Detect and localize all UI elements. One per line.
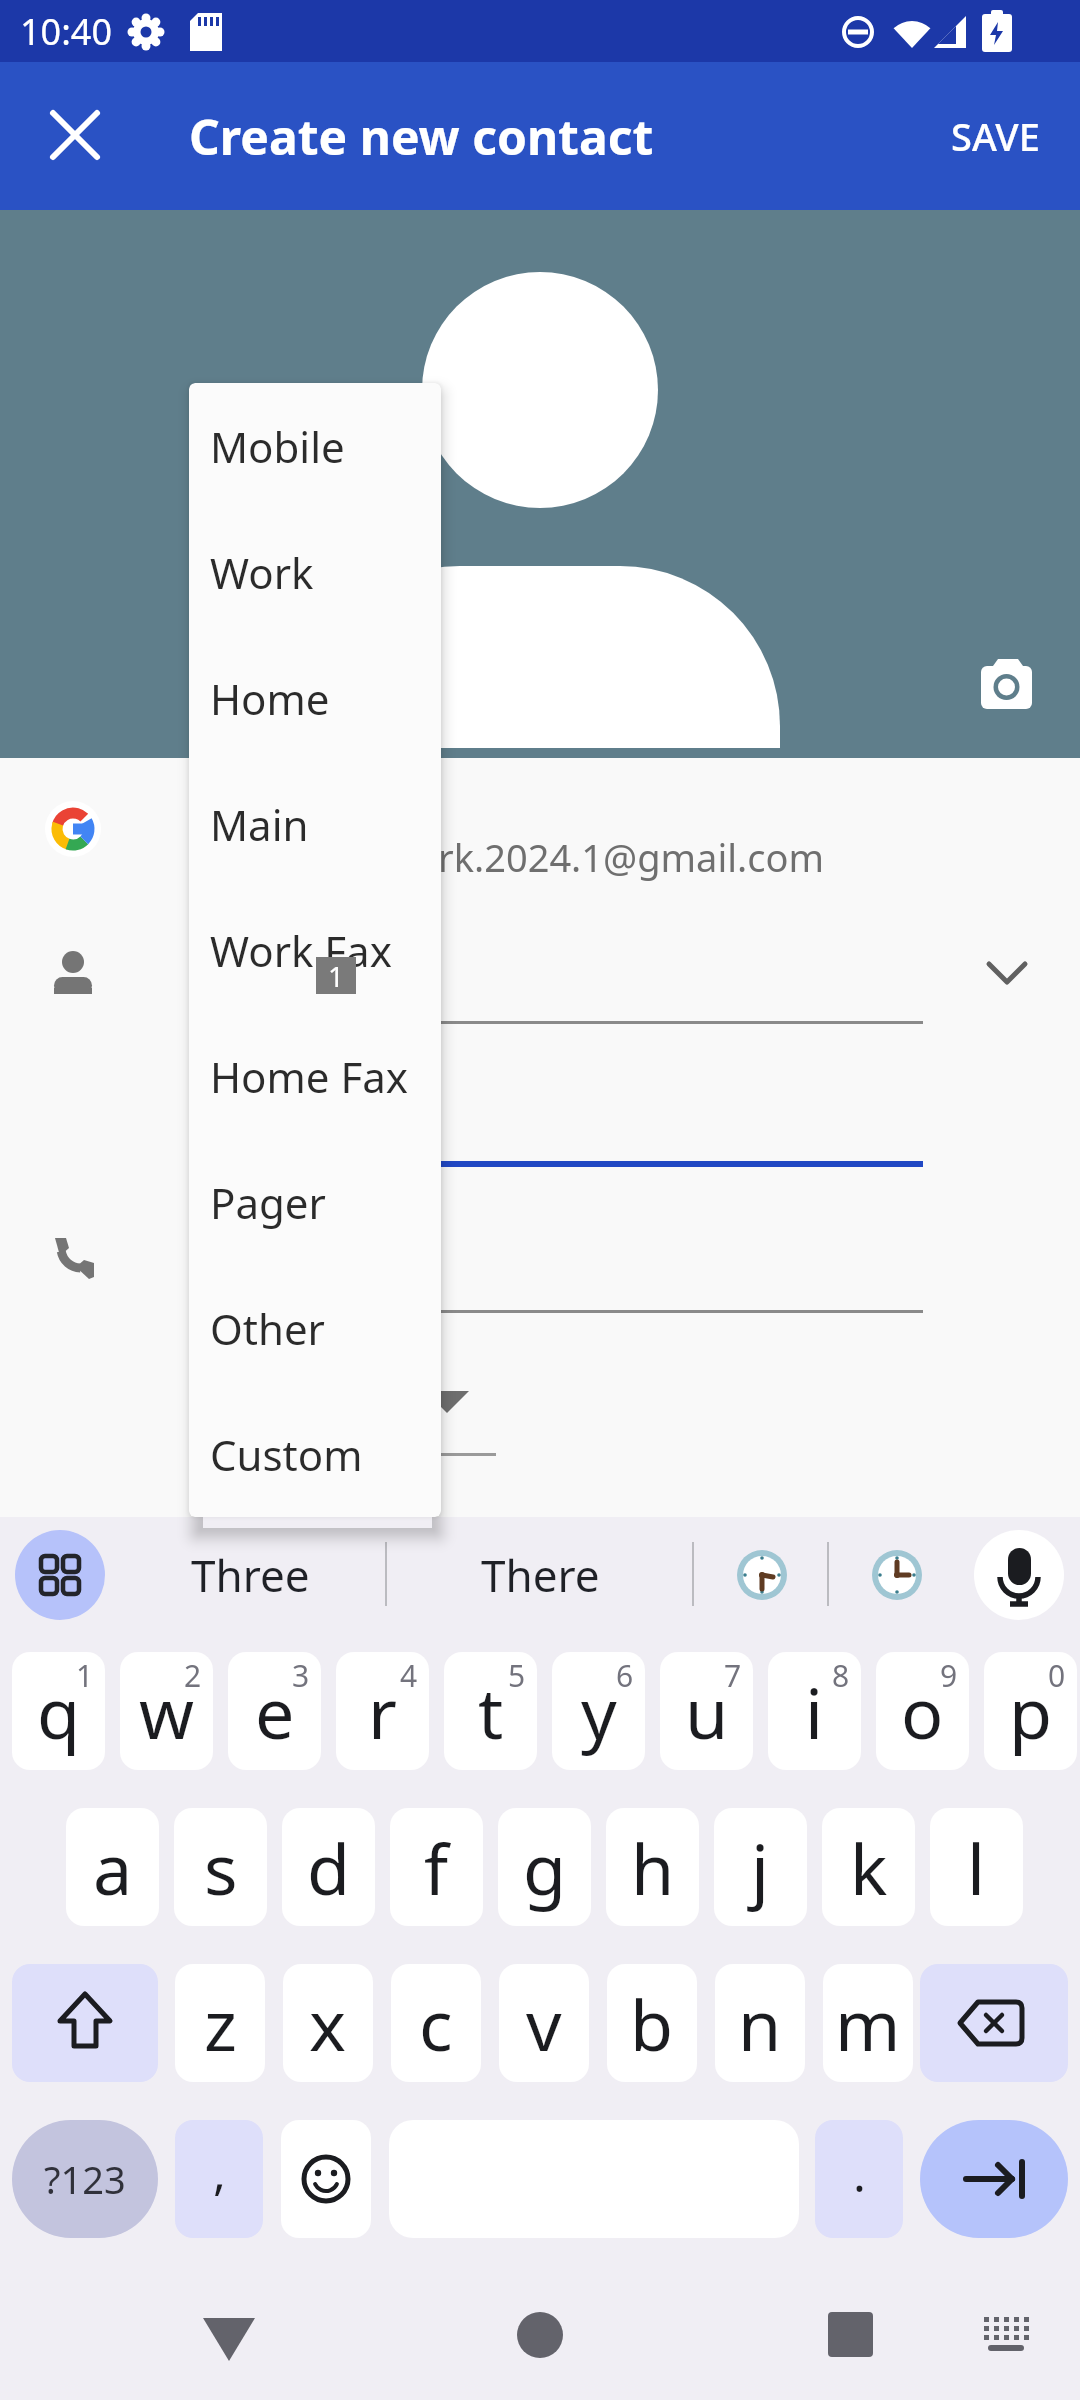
staticText: d	[307, 1820, 351, 1915]
button[interactable]: s	[174, 1808, 267, 1926]
staticText: 10:40	[20, 7, 113, 56]
staticText: 1	[76, 1655, 94, 1696]
button[interactable]: d	[282, 1808, 375, 1926]
staticText: Work	[210, 544, 314, 601]
button[interactable]	[500, 2295, 580, 2375]
button[interactable]: Mobile	[189, 383, 441, 509]
staticText: x	[309, 1976, 347, 2071]
button[interactable]: l	[930, 1808, 1023, 1926]
staticText: .	[853, 2141, 866, 2206]
button[interactable]: Custom	[189, 1391, 441, 1517]
staticText: ?123	[44, 2153, 126, 2205]
button[interactable]: v	[499, 1964, 589, 2082]
button[interactable]: o	[876, 1652, 969, 1770]
staticText: r	[368, 1664, 397, 1759]
staticText: Pager	[210, 1174, 326, 1231]
button[interactable]: ?123	[12, 2120, 158, 2238]
staticText: Custom	[210, 1426, 363, 1483]
staticText: k	[850, 1820, 888, 1915]
button[interactable]	[40, 100, 110, 170]
button[interactable]	[281, 2120, 371, 2238]
button[interactable]: q	[12, 1652, 105, 1770]
staticText: n	[738, 1976, 782, 2071]
button[interactable]: Home Fax	[189, 1013, 441, 1139]
staticText: 4	[400, 1655, 418, 1696]
button[interactable]: m	[823, 1964, 913, 2082]
staticText: Create new contact	[189, 104, 654, 169]
staticText: g	[523, 1820, 567, 1915]
staticText: ,	[213, 2139, 226, 2204]
button[interactable]: There	[410, 1530, 670, 1620]
button[interactable]: Work	[189, 509, 441, 635]
staticText: 5	[508, 1655, 526, 1696]
staticText: h	[631, 1820, 675, 1915]
staticText: w	[139, 1664, 195, 1759]
button[interactable]	[920, 1964, 1068, 2082]
staticText: s	[204, 1820, 238, 1915]
staticText: 6	[616, 1655, 634, 1696]
button[interactable]: Work Fax	[189, 887, 441, 1013]
button[interactable]	[810, 2295, 890, 2375]
staticText: Three	[191, 1545, 310, 1605]
button[interactable]: p	[984, 1652, 1077, 1770]
staticText: z	[204, 1976, 237, 2071]
staticText: j	[751, 1820, 770, 1915]
button[interactable]: y	[552, 1652, 645, 1770]
button[interactable]: u	[660, 1652, 753, 1770]
staticText: v	[526, 1976, 562, 2071]
button[interactable]: j	[714, 1808, 807, 1926]
staticText: Home Fax	[210, 1048, 408, 1105]
staticText: 1	[328, 957, 345, 994]
button[interactable]: .	[815, 2120, 903, 2238]
staticText: 7	[724, 1655, 742, 1696]
staticText: t	[478, 1664, 504, 1759]
button[interactable]: SAVE	[930, 62, 1060, 210]
button[interactable]: x	[283, 1964, 373, 2082]
staticText: 0	[1048, 1655, 1066, 1696]
button[interactable]: c	[391, 1964, 481, 2082]
staticText: 8	[832, 1655, 850, 1696]
button[interactable]: a	[66, 1808, 159, 1926]
staticText: rk.2024.1@gmail.com	[438, 831, 824, 883]
staticText: o	[901, 1664, 944, 1759]
staticText: Main	[210, 796, 309, 853]
button[interactable]: Home	[189, 635, 441, 761]
button[interactable]: h	[606, 1808, 699, 1926]
staticText: p	[1009, 1664, 1053, 1759]
button[interactable]	[12, 1964, 158, 2082]
button[interactable]	[190, 2295, 270, 2375]
button[interactable]: k	[822, 1808, 915, 1926]
staticText: c	[419, 1976, 453, 2071]
staticText: l	[967, 1820, 986, 1915]
staticText: y	[581, 1664, 617, 1759]
button[interactable]	[15, 1530, 105, 1620]
staticText: Other	[210, 1300, 325, 1357]
button[interactable]: Other	[189, 1265, 441, 1391]
staticText: Work Fax	[210, 922, 392, 979]
staticText: b	[630, 1976, 674, 2071]
button[interactable]: r	[336, 1652, 429, 1770]
button[interactable]	[974, 1530, 1064, 1620]
button[interactable]	[0, 210, 1080, 758]
button[interactable]: z	[175, 1964, 265, 2082]
button[interactable]: n	[715, 1964, 805, 2082]
button[interactable]: Main	[189, 761, 441, 887]
staticText: f	[424, 1820, 449, 1915]
button[interactable]	[920, 2120, 1068, 2238]
button[interactable]: Three	[120, 1530, 380, 1620]
button[interactable]: b	[607, 1964, 697, 2082]
staticText: SAVE	[951, 110, 1040, 162]
button[interactable]: g	[498, 1808, 591, 1926]
staticText: q	[37, 1664, 81, 1759]
button[interactable]: t	[444, 1652, 537, 1770]
staticText: Home	[210, 670, 330, 727]
button[interactable]	[975, 2300, 1045, 2370]
button[interactable]: f	[390, 1808, 483, 1926]
button[interactable]: i	[768, 1652, 861, 1770]
button[interactable]: Pager	[189, 1139, 441, 1265]
button[interactable]: e	[228, 1652, 321, 1770]
button[interactable]: ,	[175, 2120, 263, 2238]
button[interactable]: w	[120, 1652, 213, 1770]
staticText: m	[835, 1976, 901, 2071]
